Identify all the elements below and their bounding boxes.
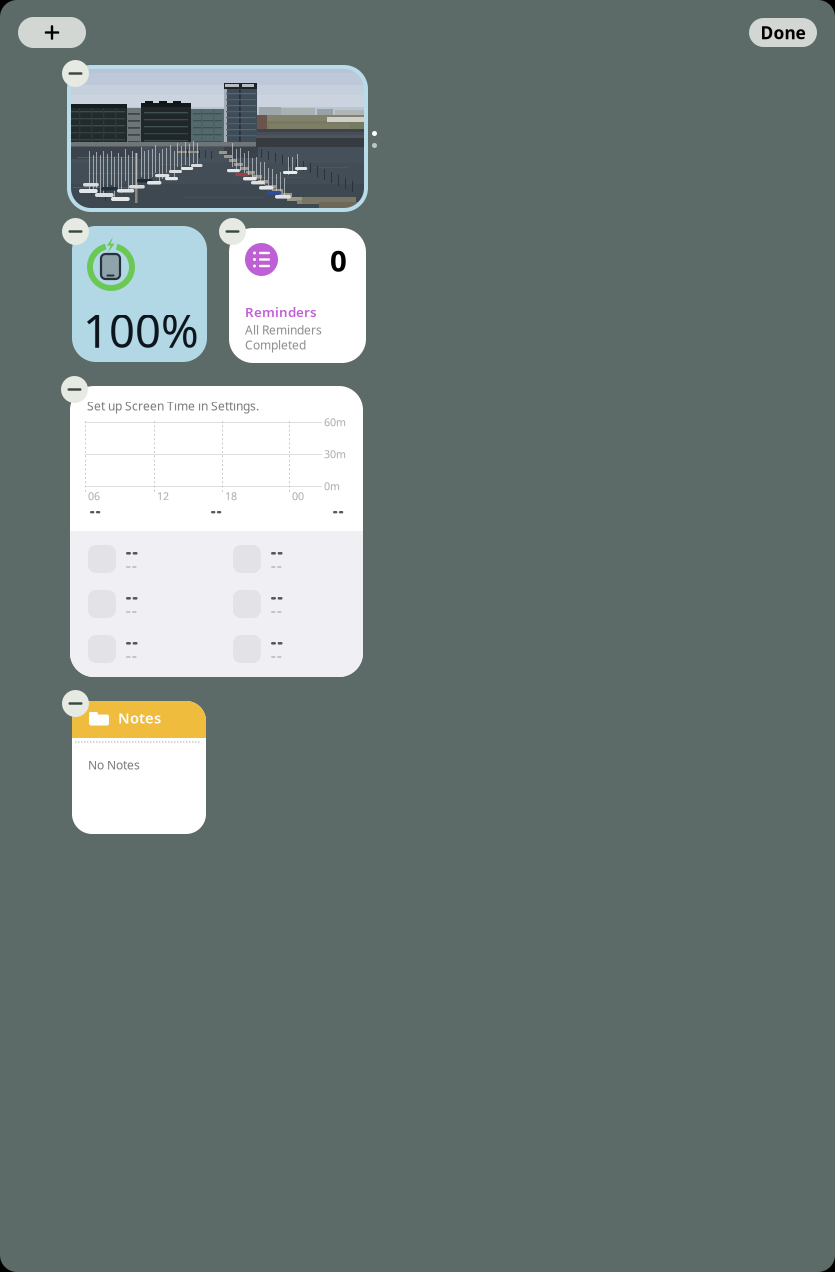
staticText: 12 bbox=[157, 489, 169, 503]
button[interactable]: Set up Screen Time in Settings. bbox=[70, 386, 363, 677]
staticText: 0 bbox=[330, 241, 347, 280]
button[interactable]: Done bbox=[749, 18, 817, 47]
button[interactable]: Add widget bbox=[18, 17, 86, 48]
button[interactable]: Remove widget bbox=[62, 60, 89, 87]
staticText: Reminders bbox=[245, 303, 317, 321]
staticText: 30m bbox=[324, 447, 346, 461]
staticText: No Notes bbox=[88, 757, 140, 773]
staticText: Done bbox=[760, 21, 805, 44]
button[interactable]: Remove widget bbox=[219, 218, 246, 245]
staticText: 00 bbox=[292, 489, 304, 503]
button[interactable]: 0 bbox=[229, 228, 366, 363]
button[interactable]: Remove widget bbox=[61, 376, 88, 403]
staticText: 60m bbox=[324, 415, 346, 429]
staticText: Completed bbox=[245, 337, 306, 353]
button[interactable]: Notes bbox=[72, 701, 206, 834]
button[interactable]: Remove widget bbox=[62, 690, 89, 717]
button[interactable]: Batteries widget, 100% bbox=[72, 226, 207, 362]
staticText: All Reminders bbox=[245, 322, 322, 338]
staticText: 18 bbox=[225, 489, 237, 503]
staticText: 06 bbox=[88, 489, 100, 503]
staticText: Notes bbox=[118, 708, 161, 727]
button[interactable]: Photos widget bbox=[69, 67, 366, 210]
staticText: 100% bbox=[83, 300, 199, 360]
staticText: 0m bbox=[324, 479, 340, 493]
staticText: Set up Screen Time in Settings. bbox=[87, 398, 259, 414]
button[interactable]: Remove widget bbox=[62, 218, 89, 245]
